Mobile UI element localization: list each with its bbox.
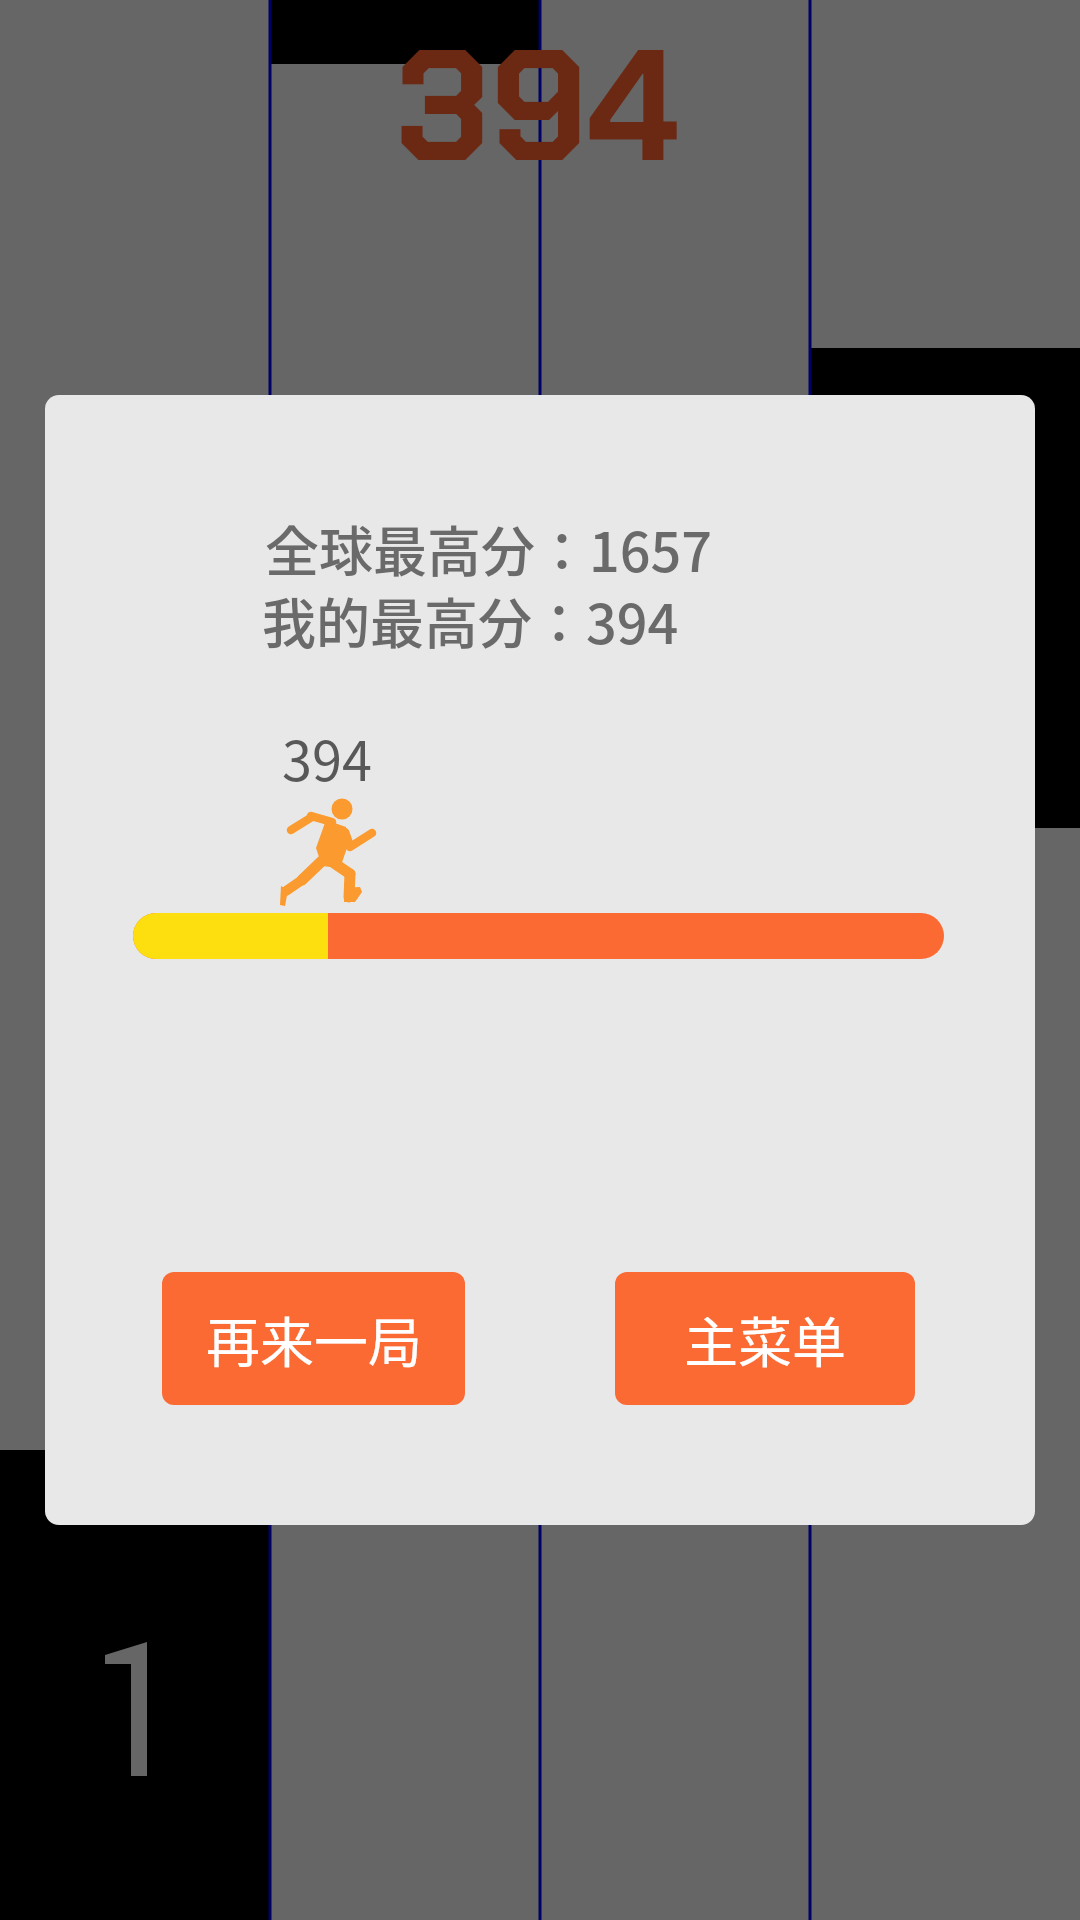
button[interactable]: 主菜单 (615, 1272, 915, 1405)
staticText: 再来一局 (206, 1300, 422, 1378)
other: Runner progress marker (279, 798, 373, 905)
staticText: 394 (396, 5, 679, 208)
staticText: 全球最高分：1657 (265, 509, 713, 587)
staticText: 394 (282, 718, 372, 796)
button[interactable]: 再来一局 (162, 1272, 465, 1405)
staticText: 我的最高分：394 (262, 581, 679, 659)
staticText: 主菜单 (684, 1300, 846, 1378)
